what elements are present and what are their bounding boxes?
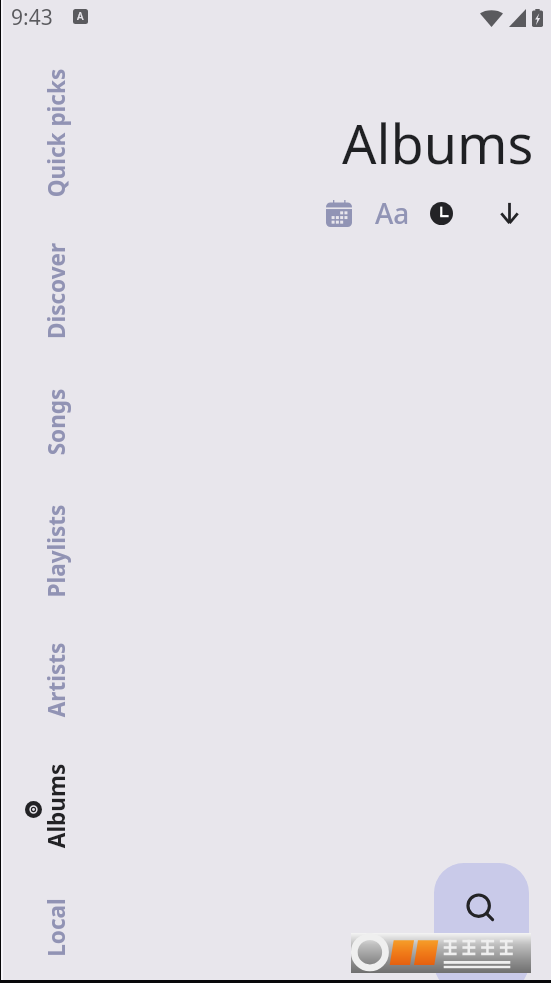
button[interactable]: Playlists bbox=[26, 476, 86, 626]
button[interactable]: Search bbox=[434, 863, 529, 983]
button[interactable]: Quick picks bbox=[26, 58, 86, 208]
staticText: Aa bbox=[375, 194, 410, 232]
button[interactable]: Local bbox=[26, 852, 86, 983]
staticText: Songs bbox=[40, 388, 71, 455]
button[interactable]: Recently played bbox=[413, 188, 463, 238]
staticText: Discover bbox=[40, 242, 71, 339]
staticText: A bbox=[77, 9, 84, 23]
staticText: Albums bbox=[342, 106, 534, 180]
button[interactable]: Sort by name bbox=[363, 188, 413, 238]
button[interactable]: Artists bbox=[26, 605, 86, 755]
button[interactable]: Discover bbox=[26, 216, 86, 366]
button[interactable]: Sort by date bbox=[313, 188, 363, 238]
staticText: Quick picks bbox=[40, 68, 71, 197]
button[interactable]: Albums bbox=[26, 731, 86, 881]
staticText: 9:43 bbox=[11, 3, 53, 32]
button[interactable]: Sort descending bbox=[484, 188, 534, 238]
staticText: Local bbox=[41, 898, 72, 957]
staticText: Playlists bbox=[40, 504, 71, 597]
staticText: Albums bbox=[40, 763, 71, 848]
button[interactable]: Songs bbox=[26, 347, 86, 497]
staticText: Artists bbox=[40, 642, 71, 717]
